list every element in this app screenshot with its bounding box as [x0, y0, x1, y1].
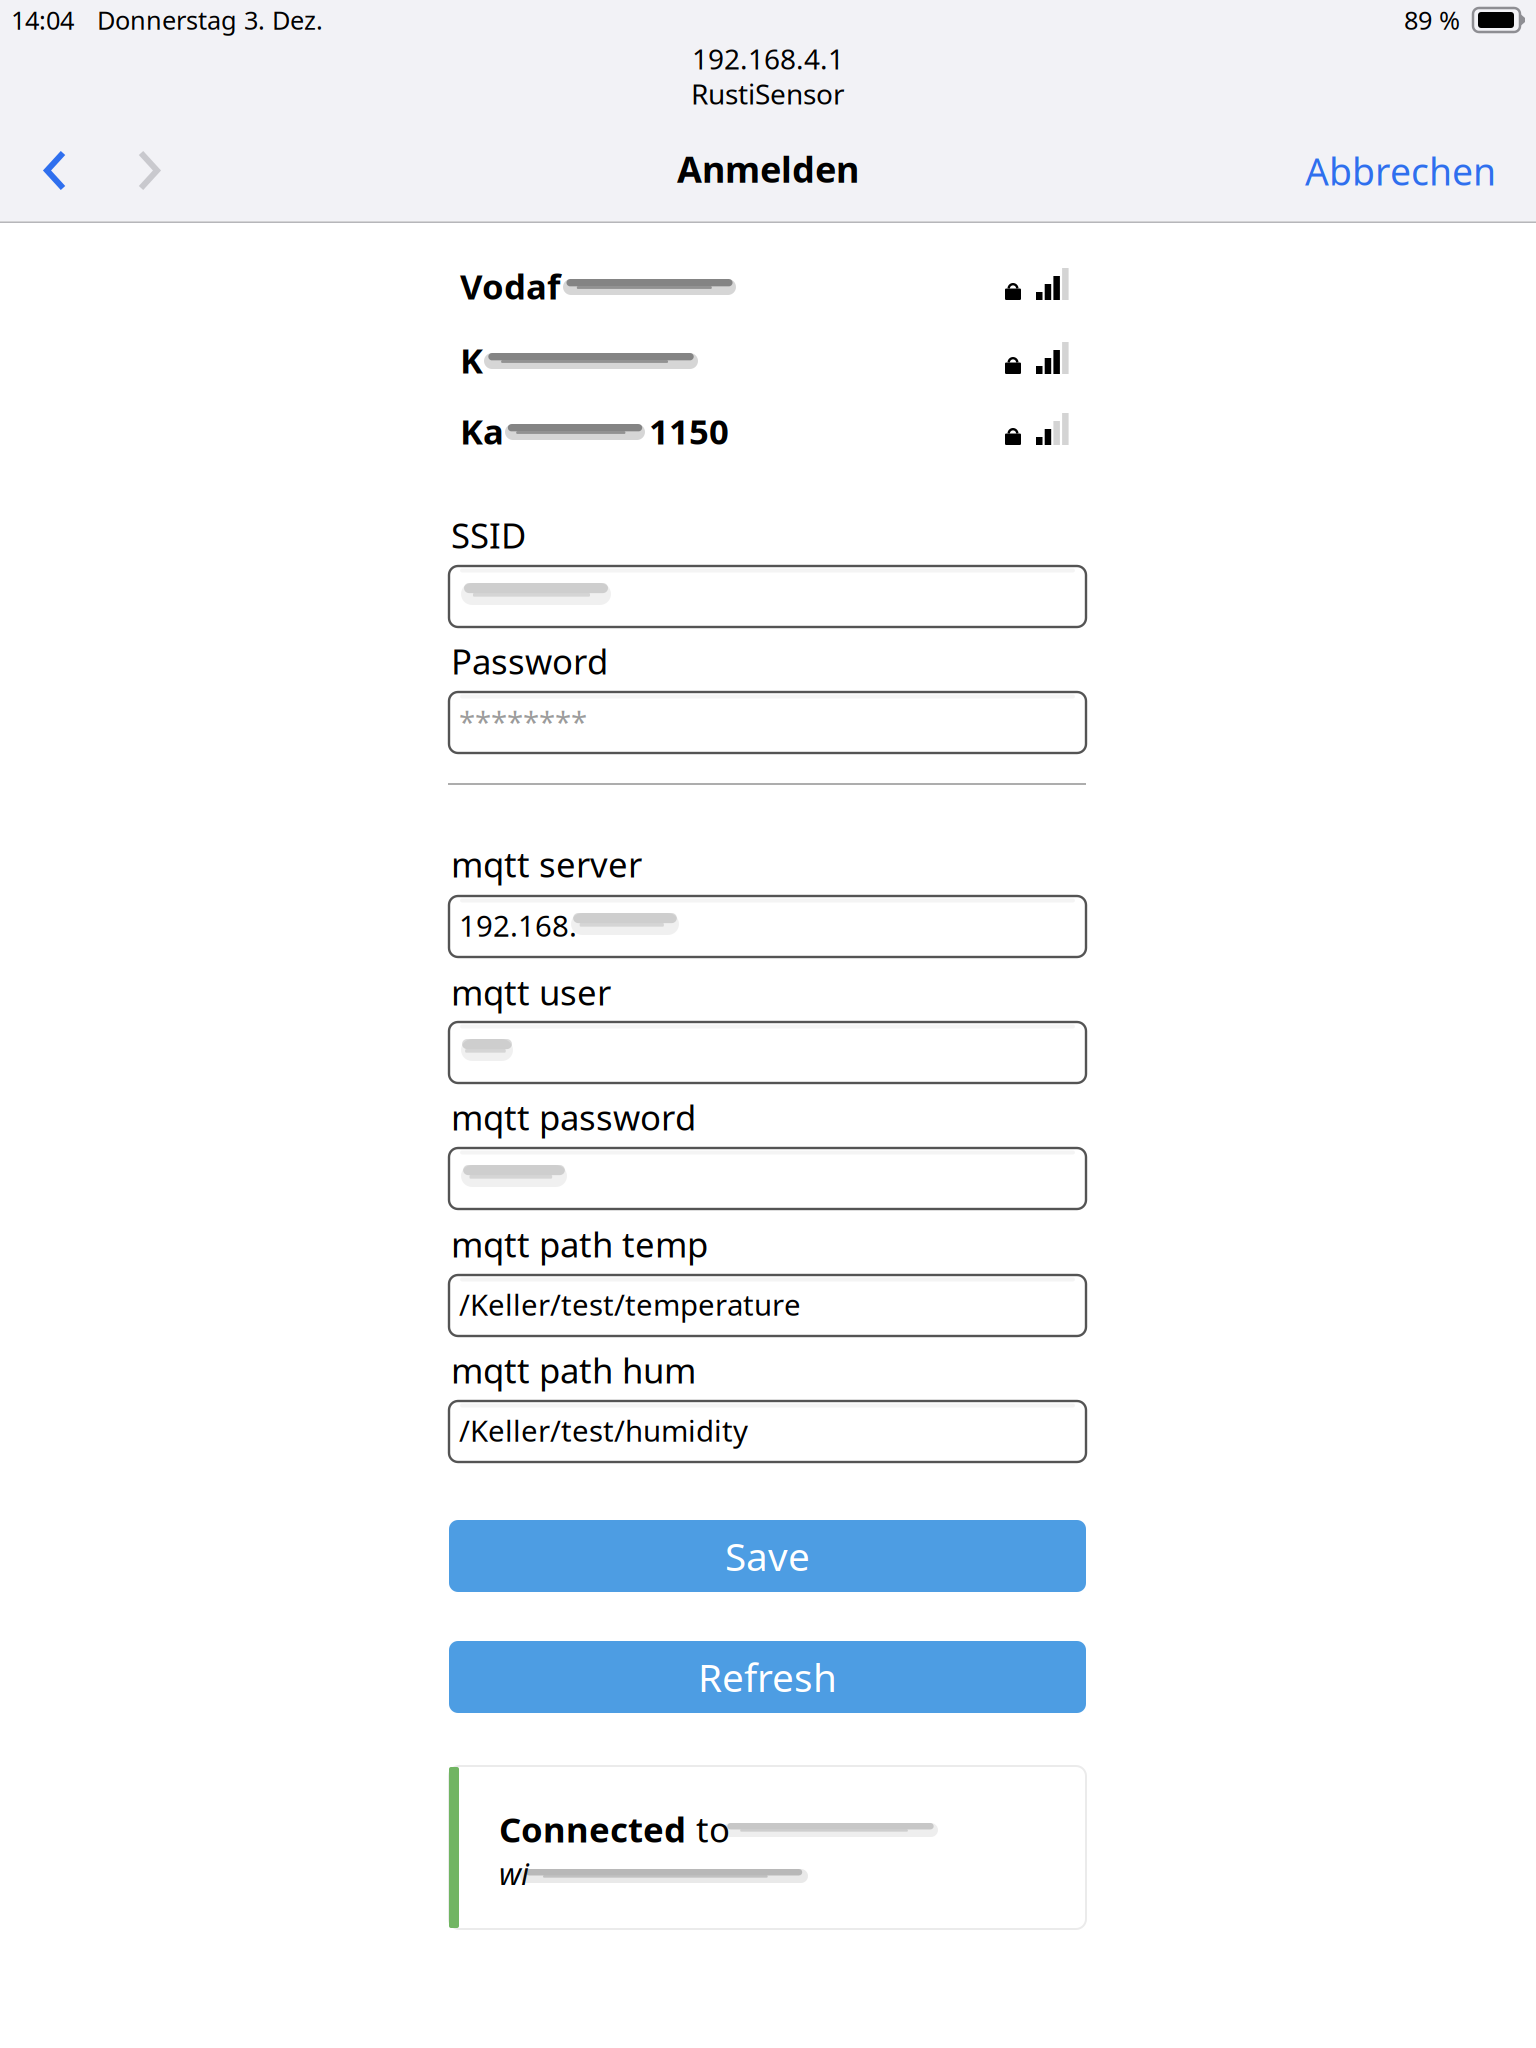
staticText: Vodaf — [460, 263, 560, 309]
staticText: 14:04 — [11, 3, 74, 37]
staticText: Donnerstag 3. Dez. — [97, 3, 323, 37]
button[interactable]: Abbrechen — [1264, 128, 1496, 214]
button[interactable]: Ka — [449, 408, 1086, 446]
staticText: 89 % — [1404, 3, 1460, 37]
staticText: /Keller/test/humidity — [459, 1411, 748, 1450]
staticText: Abbrechen — [1305, 146, 1496, 196]
staticText: wi — [499, 1853, 529, 1894]
textField[interactable]: /Keller/test/humidity — [449, 1401, 1086, 1462]
staticText: mqtt password — [451, 1094, 696, 1140]
staticText: K — [460, 337, 483, 383]
staticText: Password — [451, 638, 608, 684]
textField[interactable]: ******** — [449, 692, 1086, 753]
button[interactable]: Vodaf — [449, 263, 1086, 301]
staticText: Ka — [460, 408, 504, 454]
staticText: RustiSensor — [691, 75, 845, 112]
textField[interactable]: SSID — [449, 566, 1086, 627]
staticText: SSID — [451, 512, 526, 558]
staticText: to — [696, 1806, 730, 1852]
staticText: 1150 — [649, 408, 729, 454]
staticText: mqtt user — [451, 969, 611, 1015]
staticText: mqtt path temp — [451, 1221, 708, 1267]
staticText: Anmelden — [677, 145, 859, 193]
staticText: 192.168.4.1 — [692, 40, 844, 77]
textField[interactable]: mqtt user — [449, 1022, 1086, 1083]
staticText: ******** — [459, 702, 587, 741]
staticText: mqtt path hum — [451, 1347, 696, 1393]
button[interactable]: K — [449, 337, 1086, 375]
button[interactable]: Save — [449, 1520, 1086, 1592]
textField[interactable]: mqtt password — [449, 1148, 1086, 1209]
staticText: 192.168. — [459, 906, 577, 945]
staticText: Connected — [499, 1806, 686, 1852]
button[interactable]: Refresh — [449, 1641, 1086, 1713]
button[interactable]: Back — [12, 127, 98, 213]
staticText: /Keller/test/temperature — [459, 1285, 801, 1324]
textField[interactable]: /Keller/test/temperature — [449, 1275, 1086, 1336]
textField[interactable]: 192.168. — [449, 896, 1086, 957]
staticText: Refresh — [698, 1651, 837, 1703]
staticText: Save — [725, 1530, 810, 1582]
button[interactable]: Forward — [106, 127, 192, 213]
staticText: mqtt server — [451, 841, 642, 887]
